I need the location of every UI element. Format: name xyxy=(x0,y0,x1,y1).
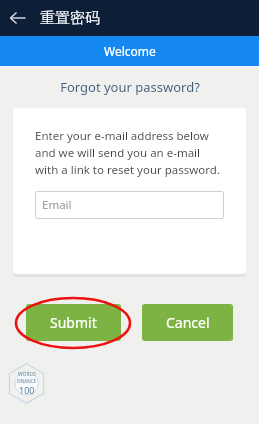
staticText: Submit xyxy=(50,313,97,332)
staticText: Forgot your password? xyxy=(60,78,200,96)
staticText: Welcome xyxy=(104,43,156,59)
staticText: Cancel xyxy=(166,313,210,332)
staticText: 重置密码 xyxy=(40,9,100,28)
button[interactable]: Cancel xyxy=(142,304,233,341)
button[interactable]: Email xyxy=(35,191,224,219)
staticText: Email xyxy=(42,197,72,213)
staticText: FINANCE xyxy=(17,378,36,384)
button[interactable]: Submit xyxy=(26,304,121,341)
button[interactable]: Welcome xyxy=(0,36,259,66)
staticText: 100 xyxy=(19,384,35,396)
staticText: WORLD xyxy=(18,371,36,378)
button[interactable]: Back xyxy=(0,0,36,36)
staticText: Enter your e-mail address below and we w… xyxy=(35,128,224,177)
